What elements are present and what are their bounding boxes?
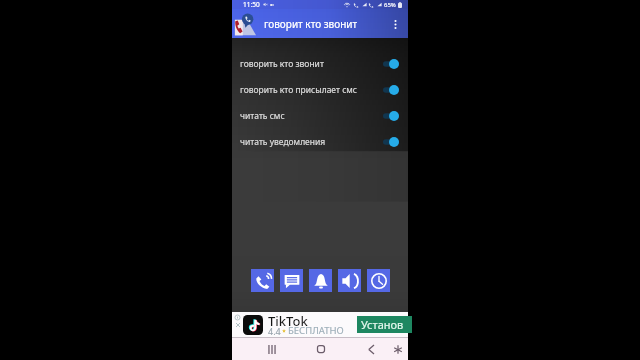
staticText: говорить кто звонит [240,58,324,70]
button[interactable]: говорить кто звонит [232,51,408,77]
staticText: 4.4 [268,325,281,337]
staticText: БЕСПЛАТНО [288,324,344,337]
button[interactable]: читать уведомления [232,129,408,155]
staticText: Установ [361,317,404,332]
button[interactable]: Schedule [367,269,390,292]
button[interactable]: Back [359,340,382,358]
button[interactable]: Messages [280,269,303,292]
button[interactable]: Установ [357,316,412,333]
staticText: читать уведомления [240,136,326,148]
button[interactable]: Accessibility [387,340,408,358]
button[interactable]: Home [308,340,333,358]
button[interactable]: Notifications [309,269,332,292]
staticText: TikTok [268,312,308,330]
staticText: 11:50 [243,0,260,9]
button[interactable]: Volume [338,269,361,292]
staticText: говорит кто звонит [264,17,358,31]
staticText: говорить кто присылает смс [240,84,358,96]
button[interactable]: More options [385,14,405,34]
button[interactable]: читать смс [232,103,408,129]
button[interactable]: Recent apps [259,340,284,358]
staticText: 65% [384,1,396,9]
staticText: читать смс [240,110,285,122]
button[interactable]: говорить кто присылает смс [232,77,408,103]
button[interactable]: Call announcements [251,269,274,292]
